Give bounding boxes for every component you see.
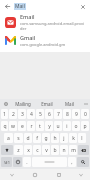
button[interactable]: m [69, 145, 77, 155]
button[interactable]: Home [23, 169, 47, 180]
button[interactable]: l [78, 133, 86, 143]
button[interactable]: More suggestions [81, 99, 90, 108]
button[interactable]: 5 [36, 109, 44, 119]
staticText: j [63, 135, 65, 142]
button[interactable]: w [9, 121, 17, 131]
button[interactable]: 0 [81, 109, 89, 119]
button[interactable]: Mailing [11, 99, 35, 108]
button[interactable]: Back [0, 0, 90, 13]
staticText: 5 [39, 111, 42, 118]
staticText: q [3, 123, 7, 130]
staticText: Email [20, 13, 35, 20]
button[interactable]: 8 [63, 109, 71, 119]
staticText: . [26, 159, 28, 166]
staticText: 1 [3, 111, 6, 118]
button[interactable]: o [72, 121, 80, 131]
button[interactable]: Space [32, 157, 67, 167]
button[interactable]: x [24, 145, 32, 155]
button[interactable]: 4 [27, 109, 35, 119]
staticText: o [74, 123, 78, 130]
button[interactable]: j [60, 133, 68, 143]
staticText: i [66, 123, 68, 130]
staticText: a [7, 135, 10, 142]
staticText: , [71, 159, 73, 166]
staticText: r [30, 123, 33, 130]
staticText: z [17, 147, 20, 154]
staticText: 6 [48, 111, 51, 118]
staticText: t [39, 123, 41, 130]
staticText: e [21, 123, 24, 130]
button[interactable]: s [14, 133, 23, 143]
staticText: u [56, 123, 60, 130]
button[interactable]: Keyboard settings [0, 99, 11, 108]
staticText: m [71, 147, 76, 154]
staticText: y [48, 123, 51, 130]
staticText: 2 [12, 111, 15, 118]
button[interactable]: . [23, 157, 31, 167]
button[interactable]: 7 [54, 109, 62, 119]
staticText: Mailing [15, 101, 31, 107]
button[interactable]: 3 [18, 109, 26, 119]
button[interactable]: Shift [1, 145, 13, 155]
button[interactable]: q [1, 121, 8, 131]
staticText: g [44, 135, 48, 142]
button[interactable]: Search [77, 157, 89, 167]
button[interactable]: g [42, 133, 50, 143]
staticText: 0 [84, 111, 87, 118]
staticText: 8 [66, 111, 69, 118]
button[interactable]: c [33, 145, 41, 155]
staticText: w [11, 123, 15, 130]
button[interactable]: i [63, 121, 71, 131]
staticText: 9 [75, 111, 78, 118]
button[interactable]: t [36, 121, 44, 131]
button[interactable]: e [18, 121, 26, 131]
button[interactable]: d [24, 133, 32, 143]
button[interactable]: p [81, 121, 89, 131]
staticText: 7 [57, 111, 60, 118]
button[interactable]: Emoji [13, 157, 22, 167]
button[interactable]: Email [0, 13, 90, 31]
button[interactable]: z [14, 145, 23, 155]
button[interactable]: y [45, 121, 53, 131]
staticText: com.samsung.android.email.provider [20, 21, 86, 31]
button[interactable]: Email [35, 99, 58, 108]
staticText: b [53, 147, 57, 154]
button[interactable]: 2 [9, 109, 17, 119]
staticText: h [53, 135, 57, 142]
button[interactable]: a [4, 133, 13, 143]
button[interactable]: k [69, 133, 77, 143]
staticText: 4 [30, 111, 33, 118]
staticText: x [27, 147, 30, 154]
button[interactable]: h [51, 133, 59, 143]
button[interactable]: v [42, 145, 50, 155]
staticText: d [26, 135, 30, 142]
button[interactable]: 9 [72, 109, 80, 119]
staticText: p [83, 123, 87, 130]
button[interactable]: Back [3, 2, 12, 11]
staticText: Mail [65, 101, 74, 107]
button[interactable]: Recent apps [47, 169, 71, 180]
button[interactable]: Mail [58, 99, 81, 108]
staticText: c [36, 147, 39, 154]
staticText: f [36, 135, 38, 142]
button[interactable]: f [33, 133, 41, 143]
button[interactable]: n [60, 145, 68, 155]
staticText: Email [41, 101, 53, 107]
button[interactable]: Hide keyboard [71, 169, 90, 180]
staticText: com.google.android.gm [20, 42, 66, 47]
button[interactable]: Clear [78, 2, 87, 11]
button[interactable]: 6 [45, 109, 53, 119]
button[interactable]: Backspace [78, 145, 89, 155]
staticText: 3 [21, 111, 24, 118]
button[interactable]: r [27, 121, 35, 131]
button[interactable]: b [51, 145, 59, 155]
staticText: n [62, 147, 66, 154]
button[interactable]: , [68, 157, 76, 167]
button[interactable]: Back [0, 169, 23, 180]
button[interactable]: !#1 [1, 157, 12, 167]
button[interactable]: Gmail [0, 31, 90, 49]
button[interactable]: u [54, 121, 62, 131]
staticText: k [72, 135, 75, 142]
button[interactable]: 1 [1, 109, 8, 119]
staticText: !#1 [4, 160, 10, 165]
